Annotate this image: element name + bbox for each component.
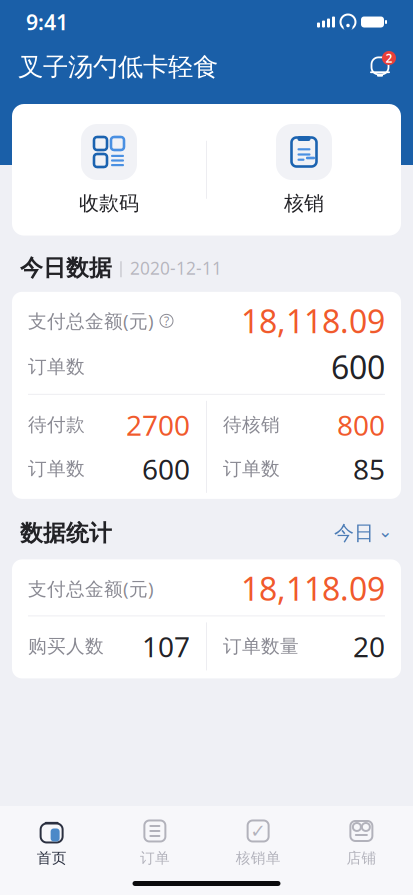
staticText: 待核销	[223, 413, 280, 436]
staticText: 2020-12-11	[130, 256, 222, 279]
staticText: 支付总金额(元)	[28, 576, 154, 601]
staticText: 核销	[284, 191, 324, 216]
staticText: ✓	[250, 820, 266, 842]
staticText: 今日数据	[20, 254, 112, 282]
staticText: 600	[331, 346, 385, 388]
staticText: ⌄	[378, 521, 393, 541]
staticText: 购买人数	[28, 635, 104, 658]
staticText: 核销单	[236, 849, 281, 867]
staticText: 首页	[37, 849, 67, 867]
staticText: 待付款	[28, 413, 85, 436]
staticText: 2	[385, 50, 392, 66]
staticText: 订单数量	[223, 635, 299, 658]
button[interactable]: 首页	[0, 810, 103, 873]
staticText: 800	[337, 406, 385, 443]
button[interactable]: ✓	[206, 810, 310, 873]
staticText: 订单	[140, 849, 170, 867]
button[interactable]: 核销	[207, 120, 401, 220]
button[interactable]: 通知	[365, 52, 395, 82]
button[interactable]: 店铺	[310, 810, 413, 873]
staticText: 叉子汤勺低卡轻食	[18, 51, 218, 82]
staticText: ｜	[113, 258, 129, 278]
staticText: 2700	[126, 406, 190, 443]
staticText: 收款码	[79, 191, 139, 216]
staticText: 订单数	[28, 355, 85, 378]
staticText: 18,118.09	[241, 567, 385, 610]
staticText: 数据统计	[20, 519, 112, 547]
staticText: 107	[142, 628, 190, 665]
staticText: 9:41	[26, 8, 68, 36]
button[interactable]: 今日	[324, 517, 393, 549]
staticText: ?	[164, 313, 169, 329]
staticText: 今日	[334, 521, 374, 545]
staticText: 订单数	[223, 457, 280, 480]
staticText: 18,118.09	[241, 300, 385, 342]
staticText: 支付总金额(元)	[28, 308, 154, 333]
button[interactable]: 订单	[103, 810, 206, 873]
staticText: 600	[142, 450, 190, 487]
staticText: 85	[353, 450, 385, 487]
staticText: 订单数	[28, 457, 85, 480]
staticText: 20	[353, 628, 385, 665]
staticText: 店铺	[346, 849, 376, 867]
button[interactable]: 收款码	[12, 120, 206, 220]
